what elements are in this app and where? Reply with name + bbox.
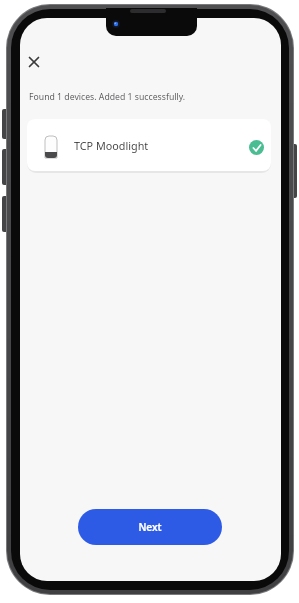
staticText: Found 1 devices. Added 1 successfully. (29, 91, 186, 103)
button[interactable]: TCP Moodlight (27, 119, 271, 171)
button[interactable]: Next (78, 509, 222, 545)
button[interactable] (23, 51, 45, 73)
staticText: Next (138, 520, 162, 534)
staticText: TCP Moodlight (74, 138, 149, 153)
